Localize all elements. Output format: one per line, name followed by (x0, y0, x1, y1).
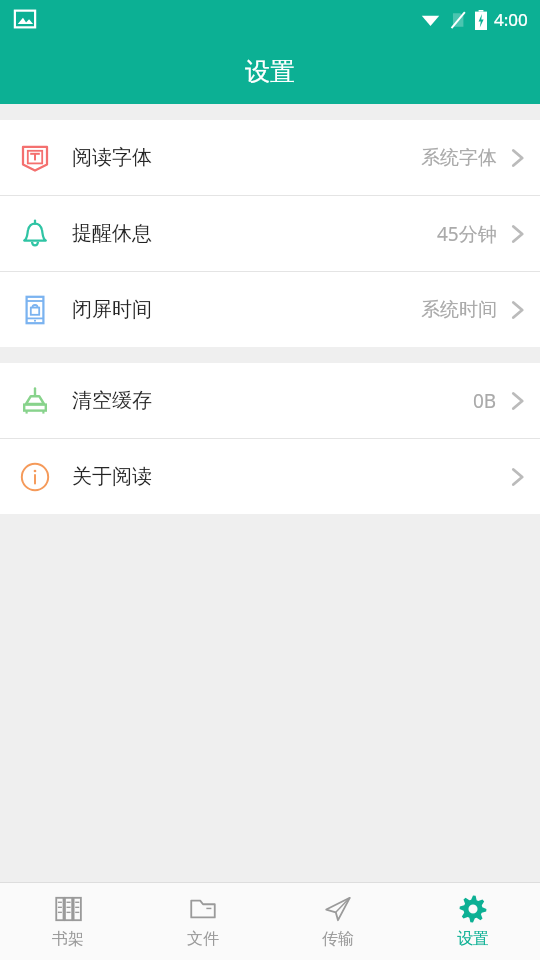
staticText: 传输 (322, 929, 354, 949)
button[interactable]: 书架 (0, 883, 135, 960)
staticText: 关于阅读 (72, 464, 152, 489)
staticText: 45分钟 (437, 221, 497, 247)
button[interactable]: 传输 (270, 883, 405, 960)
staticText: 设置 (245, 56, 295, 87)
button[interactable]: 文件 (135, 883, 270, 960)
staticText: 阅读字体 (72, 145, 152, 170)
button[interactable]: 阅读字体 (0, 120, 540, 195)
button[interactable]: 设置 (405, 883, 540, 960)
staticText: 设置 (457, 929, 489, 949)
staticText: 闭屏时间 (72, 297, 152, 322)
staticText: 文件 (187, 929, 219, 949)
button[interactable]: 清空缓存 (0, 363, 540, 438)
staticText: 提醒休息 (72, 221, 152, 246)
button[interactable]: 关于阅读 (0, 439, 540, 514)
staticText: 0B (473, 388, 497, 414)
staticText: 4:00 (494, 8, 528, 31)
staticText: 书架 (52, 929, 84, 949)
staticText: 系统字体 (421, 146, 497, 170)
staticText: 系统时间 (421, 298, 497, 322)
button[interactable]: 提醒休息 (0, 196, 540, 271)
staticText: 清空缓存 (72, 388, 152, 413)
button[interactable]: 闭屏时间 (0, 272, 540, 347)
